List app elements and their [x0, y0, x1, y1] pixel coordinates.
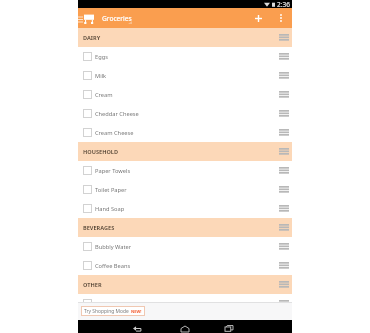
button[interactable]: Recent apps [217, 324, 240, 333]
button[interactable]: Bubbly Water [78, 237, 292, 256]
button[interactable]: Hand Soap [78, 199, 292, 218]
button[interactable]: Coffee Beans [78, 256, 292, 275]
button[interactable]: Batteries [78, 294, 292, 313]
staticText: Bubbly Water [95, 243, 132, 251]
staticText: 2:36 [277, 0, 290, 8]
staticText: Cream Cheese [95, 129, 134, 137]
staticText: Try Shopping Mode [84, 308, 129, 315]
staticText: Batteries [95, 300, 119, 308]
button[interactable]: Paper Towels [78, 161, 292, 180]
staticText: HOUSEHOLD [83, 148, 119, 156]
staticText: Groceries [102, 14, 132, 23]
staticText: Light Bulbs [95, 313, 125, 319]
button[interactable]: Cream [78, 85, 292, 104]
button[interactable]: Try Shopping Mode [81, 306, 145, 316]
button[interactable]: Toilet Paper [78, 180, 292, 199]
button[interactable]: HOUSEHOLD [78, 142, 292, 161]
staticText: Eggs [95, 53, 108, 61]
button[interactable]: Cream Cheese [78, 123, 292, 142]
button[interactable]: Back [126, 324, 149, 333]
button[interactable]: Eggs [78, 47, 292, 66]
button[interactable]: Navigation drawer [77, 12, 83, 26]
button[interactable]: DAIRY [78, 28, 292, 47]
button[interactable]: Milk [78, 66, 292, 85]
button[interactable]: Home [173, 324, 196, 333]
button[interactable]: Add item [251, 8, 265, 28]
button[interactable]: Cheddar Cheese [78, 104, 292, 123]
staticText: Milk [95, 72, 107, 80]
staticText: Paper Towels [95, 167, 131, 175]
staticText: Cream [95, 91, 113, 99]
button[interactable]: Light Bulbs [78, 313, 292, 319]
staticText: Coffee Beans [95, 262, 131, 270]
button[interactable]: OTHER [78, 275, 292, 294]
staticText: NEW! [131, 309, 142, 314]
staticText: Toilet Paper [95, 186, 127, 194]
staticText: Hand Soap [95, 205, 125, 213]
staticText: BEVERAGES [83, 224, 115, 232]
staticText: DAIRY [83, 34, 101, 42]
staticText: Cheddar Cheese [95, 110, 139, 118]
button[interactable]: Shopping cart [84, 9, 94, 29]
button[interactable]: More options [275, 8, 287, 28]
button[interactable]: BEVERAGES [78, 218, 292, 237]
staticText: OTHER [83, 281, 102, 289]
